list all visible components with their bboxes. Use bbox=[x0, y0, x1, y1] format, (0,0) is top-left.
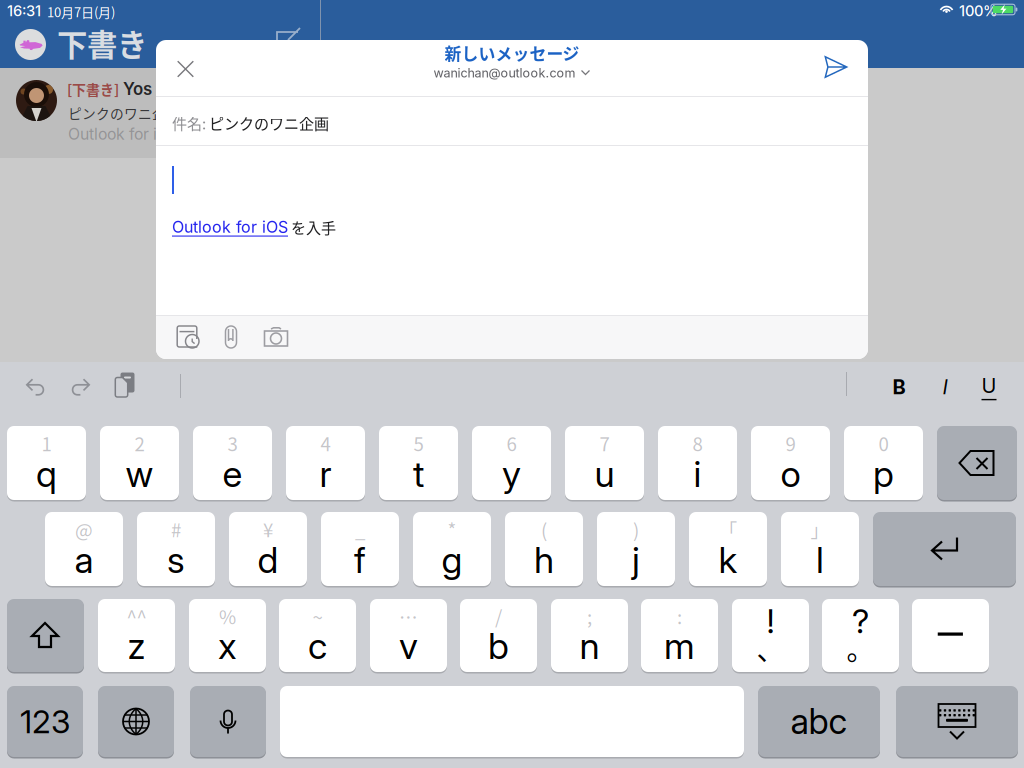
button[interactable]: ~ bbox=[279, 599, 356, 672]
staticText: ^^ bbox=[126, 602, 146, 629]
staticText: Yos bbox=[119, 79, 152, 99]
staticText: ー bbox=[935, 616, 966, 655]
staticText: 新しいメッセージ bbox=[444, 41, 579, 65]
button[interactable]: ) bbox=[597, 512, 675, 586]
button[interactable]: U bbox=[974, 374, 1004, 400]
staticText: ( bbox=[541, 515, 547, 542]
button[interactable]: Duplicate bbox=[108, 370, 142, 402]
staticText: z bbox=[127, 624, 145, 668]
staticText: Outlook for iOS bbox=[172, 217, 288, 237]
button[interactable]: Delete bbox=[937, 426, 1017, 500]
button[interactable]: ; bbox=[551, 599, 628, 672]
staticText: 100% bbox=[959, 2, 998, 20]
button[interactable]: # bbox=[137, 512, 215, 586]
staticText: ) bbox=[633, 515, 639, 542]
button[interactable]: Take photo bbox=[254, 323, 298, 351]
button[interactable]: 7 bbox=[565, 426, 644, 500]
button[interactable]: ! bbox=[732, 599, 809, 672]
staticText: 下書き bbox=[57, 21, 147, 65]
staticText: v bbox=[399, 624, 418, 668]
staticText: # bbox=[171, 515, 181, 542]
button[interactable]: 6 bbox=[472, 426, 551, 500]
button[interactable]: Shift bbox=[7, 599, 84, 672]
staticText: wanichan@outlook.com bbox=[433, 65, 575, 81]
button[interactable]: ^^ bbox=[98, 599, 175, 672]
staticText: 7 bbox=[599, 429, 609, 456]
staticText: 件名: bbox=[172, 112, 209, 134]
button[interactable]: * bbox=[413, 512, 491, 586]
staticText: ; bbox=[587, 602, 592, 629]
staticText: 、 bbox=[756, 628, 784, 668]
staticText: 「 bbox=[718, 515, 737, 542]
button[interactable]: 「 bbox=[689, 512, 767, 586]
button[interactable]: Next keyboard bbox=[98, 686, 174, 757]
button[interactable]: ー bbox=[912, 599, 989, 672]
button[interactable]: _ bbox=[321, 512, 399, 586]
staticText: r bbox=[319, 452, 331, 496]
button[interactable]: I bbox=[930, 374, 960, 400]
button[interactable]: 5 bbox=[379, 426, 458, 500]
staticText: g bbox=[441, 538, 462, 582]
button[interactable]: Close bbox=[158, 45, 213, 93]
staticText: 9 bbox=[785, 429, 795, 456]
button[interactable]: B bbox=[884, 374, 914, 400]
button[interactable]: 8 bbox=[658, 426, 737, 500]
button[interactable]: Attach file bbox=[214, 322, 248, 352]
button[interactable]: ? bbox=[822, 599, 899, 672]
button[interactable]: @ bbox=[45, 512, 123, 586]
staticText: B bbox=[892, 375, 905, 399]
button[interactable]: Send bbox=[813, 45, 859, 89]
button[interactable]: % bbox=[189, 599, 266, 672]
button[interactable]: Dictate bbox=[190, 686, 266, 757]
staticText: t bbox=[413, 452, 424, 496]
button[interactable]: Undo bbox=[16, 372, 54, 402]
button[interactable]: 1 bbox=[7, 426, 86, 500]
staticText: / bbox=[495, 602, 502, 629]
button[interactable]: 3 bbox=[193, 426, 272, 500]
button[interactable]: Schedule availability bbox=[168, 322, 208, 352]
staticText: 4 bbox=[320, 429, 330, 456]
staticText: ? bbox=[852, 601, 869, 641]
staticText: y bbox=[502, 452, 521, 496]
staticText: abc bbox=[790, 700, 847, 742]
button[interactable]: 0 bbox=[844, 426, 923, 500]
staticText: x bbox=[218, 624, 237, 668]
staticText: 3 bbox=[227, 429, 237, 456]
button[interactable]: ( bbox=[505, 512, 583, 586]
staticText: 16:31 bbox=[7, 2, 41, 20]
staticText: k bbox=[718, 538, 737, 582]
staticText: 」 bbox=[810, 515, 829, 542]
staticText: 10月7日(月) bbox=[47, 2, 115, 21]
button[interactable]: 9 bbox=[751, 426, 830, 500]
button[interactable]: … bbox=[370, 599, 447, 672]
staticText: s bbox=[167, 538, 185, 582]
button[interactable]: 4 bbox=[286, 426, 365, 500]
button[interactable]: abc bbox=[758, 686, 880, 757]
staticText: を入手 bbox=[288, 216, 336, 238]
staticText: [下書き] bbox=[67, 79, 119, 99]
button[interactable]: 」 bbox=[781, 512, 859, 586]
staticText: ! bbox=[766, 601, 774, 641]
button[interactable]: Return bbox=[873, 512, 1016, 586]
button[interactable]: Hide keyboard bbox=[896, 686, 1018, 757]
staticText: w bbox=[125, 452, 153, 496]
staticText: 123 bbox=[20, 702, 70, 741]
staticText: f bbox=[354, 538, 366, 582]
staticText: o bbox=[780, 452, 800, 496]
staticText: i bbox=[693, 452, 701, 496]
button[interactable]: Redo bbox=[62, 372, 100, 402]
button[interactable]: : bbox=[641, 599, 718, 672]
staticText: m bbox=[664, 624, 695, 668]
staticText: ~ bbox=[312, 602, 322, 629]
staticText: d bbox=[257, 538, 278, 582]
button[interactable]: ¥ bbox=[229, 512, 307, 586]
staticText: u bbox=[594, 452, 614, 496]
button[interactable]: / bbox=[460, 599, 537, 672]
staticText: n bbox=[579, 624, 599, 668]
staticText: Outlook for iO bbox=[68, 124, 169, 143]
button[interactable]: 123 bbox=[7, 686, 83, 757]
button[interactable]: 2 bbox=[100, 426, 179, 500]
staticText: 。 bbox=[846, 628, 874, 668]
staticText: j bbox=[632, 538, 640, 582]
